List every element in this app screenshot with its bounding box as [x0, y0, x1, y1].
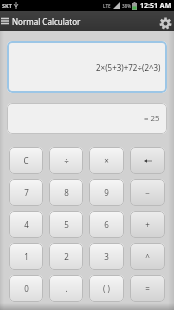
staticText: 6	[104, 219, 109, 230]
staticText: 2×(5+3)+72÷(2^3)	[96, 62, 161, 73]
staticText: 7	[24, 187, 29, 198]
staticText: +	[145, 219, 150, 230]
button[interactable]: ×	[89, 147, 124, 174]
staticText: 4	[24, 219, 29, 230]
button[interactable]	[1, 17, 9, 25]
button[interactable]: ÷	[49, 147, 83, 174]
staticText: =	[145, 283, 150, 294]
button[interactable]: ( )	[89, 275, 124, 302]
button[interactable]: 5	[49, 211, 83, 238]
button[interactable]: 2	[49, 243, 83, 270]
staticText: 2	[64, 251, 69, 262]
button[interactable]	[157, 15, 173, 31]
staticText: −	[145, 187, 150, 198]
staticText: 9	[104, 187, 109, 198]
staticText: ÷	[64, 155, 69, 166]
staticText: SKT	[2, 2, 12, 9]
staticText: 3	[104, 251, 109, 262]
staticText: .	[65, 283, 68, 294]
staticText: ×	[104, 155, 109, 166]
staticText: C	[23, 155, 29, 166]
button[interactable]: +	[130, 211, 165, 238]
button[interactable]: 1	[9, 243, 43, 270]
button[interactable]: 4	[9, 211, 43, 238]
staticText: 38%	[122, 3, 131, 9]
button[interactable]: =	[130, 275, 165, 302]
button[interactable]: C	[9, 147, 43, 174]
staticText: 5	[64, 219, 69, 230]
staticText: 12:51 AM	[140, 1, 172, 11]
button[interactable]: 9	[89, 179, 124, 206]
button[interactable]	[130, 147, 165, 174]
staticText: 0	[24, 283, 29, 294]
button[interactable]: ^	[130, 243, 165, 270]
staticText: ^	[145, 251, 150, 262]
button[interactable]: 2×(5+3)+72÷(2^3)	[7, 41, 167, 93]
staticText: ( )	[103, 283, 110, 294]
staticText: = 25	[144, 113, 160, 124]
staticText: Normal Calculator	[12, 16, 81, 27]
staticText: LTE	[103, 3, 111, 9]
button[interactable]: 7	[9, 179, 43, 206]
staticText: 1	[24, 251, 29, 262]
button[interactable]: 0	[9, 275, 43, 302]
button[interactable]: 3	[89, 243, 124, 270]
button[interactable]: −	[130, 179, 165, 206]
button[interactable]: 8	[49, 179, 83, 206]
button[interactable]: .	[49, 275, 83, 302]
button[interactable]: 6	[89, 211, 124, 238]
staticText: 8	[64, 187, 69, 198]
